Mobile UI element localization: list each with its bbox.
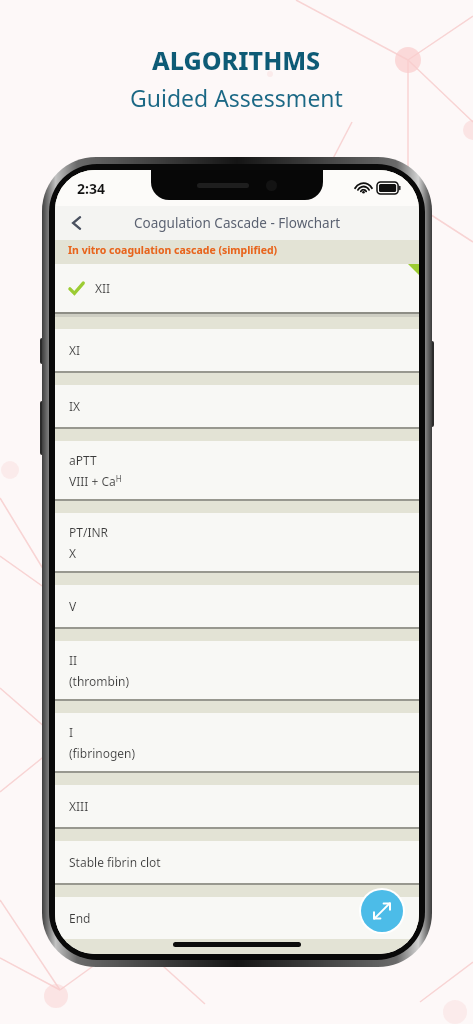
staticText: In vitro coagulation cascade (simplified… <box>68 243 278 257</box>
button[interactable]: End <box>55 897 419 939</box>
button[interactable]: Back <box>55 206 99 240</box>
button[interactable]: XI <box>55 329 419 371</box>
button[interactable]: PT/INR <box>55 513 419 571</box>
staticText: (fibrinogen) <box>69 745 136 761</box>
button[interactable]: V <box>55 585 419 627</box>
staticText: Coagulation Cascade - Flowchart <box>134 214 341 232</box>
staticText: XI <box>69 342 81 358</box>
staticText: Stable fibrin clot <box>69 854 161 870</box>
staticText: XII <box>95 280 111 296</box>
staticText: 2:34 <box>77 179 105 198</box>
button[interactable]: II <box>55 641 419 699</box>
staticText: XIII <box>69 798 89 814</box>
button[interactable]: XIII <box>55 785 419 827</box>
staticText: V <box>69 598 77 614</box>
staticText: X <box>69 545 77 561</box>
staticText: I <box>69 724 74 740</box>
staticText: End <box>69 910 91 926</box>
staticText: PT/INR <box>69 524 109 540</box>
button[interactable]: XII <box>55 264 419 312</box>
staticText: aPTT <box>69 452 97 468</box>
staticText: VIII + CaH <box>69 473 122 489</box>
button[interactable]: I <box>55 713 419 771</box>
button[interactable]: IX <box>55 385 419 427</box>
button[interactable]: aPTT <box>55 441 419 499</box>
staticText: (thrombin) <box>69 673 130 689</box>
staticText: IX <box>69 398 81 414</box>
staticText: Guided Assessment <box>130 82 343 113</box>
button[interactable]: Expand <box>361 890 403 932</box>
staticText: II <box>69 652 78 668</box>
staticText: ALGORITHMS <box>152 43 321 77</box>
button[interactable]: Stable fibrin clot <box>55 841 419 883</box>
